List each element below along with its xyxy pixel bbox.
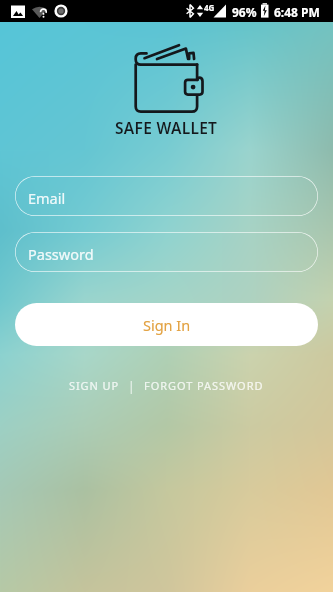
staticText: 4G (204, 2, 215, 13)
button[interactable]: FORGOT PASSWORD (139, 373, 269, 398)
button[interactable]: Email (15, 176, 318, 216)
staticText: Email (28, 188, 66, 208)
staticText: | (128, 378, 135, 394)
staticText: SAFE WALLET (115, 117, 218, 138)
button[interactable]: Sign In (15, 303, 318, 346)
staticText: Password (28, 244, 94, 264)
staticText: Sign In (143, 315, 191, 335)
other: Safe Wallet logo (129, 44, 205, 116)
staticText: SIGN UP (69, 378, 119, 393)
button[interactable]: SIGN UP (64, 373, 124, 398)
staticText: 96% (232, 4, 257, 20)
staticText: FORGOT PASSWORD (144, 378, 264, 393)
button[interactable]: Password (15, 232, 318, 272)
staticText: 6:48 PM (274, 4, 320, 20)
